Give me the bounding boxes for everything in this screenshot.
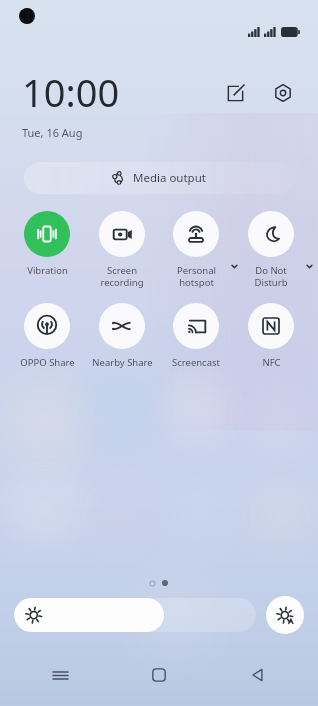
staticText: Personal hotspot [177,264,216,289]
button[interactable]: Recent apps [40,658,80,692]
button[interactable]: Home [139,658,179,692]
button[interactable]: Auto brightness [266,596,304,634]
button[interactable]: Back [238,658,278,692]
button[interactable]: NFC [235,302,307,370]
staticText: OPPO Share [20,356,75,369]
staticText: 10:00 [22,66,120,118]
staticText: Tue, 16 Aug [22,125,83,140]
staticText: Vibration [27,264,68,277]
staticText: Screen recording [100,264,144,289]
button[interactable] [14,598,256,632]
staticText: Media output [133,170,206,186]
button[interactable]: Screencast [160,302,232,370]
button[interactable]: Vibration [11,210,83,278]
staticText: Nearby Share [92,356,153,369]
button[interactable]: OPPO Share [11,302,83,370]
button[interactable]: Screen recording [86,210,158,290]
button[interactable]: Nearby Share [86,302,158,370]
button[interactable]: Do Not Disturb [235,210,307,290]
button[interactable]: Edit quick settings [218,76,252,110]
staticText: Do Not Disturb [254,264,288,289]
staticText: NFC [262,356,281,369]
button[interactable]: Settings [266,76,300,110]
button[interactable]: Media output [24,162,294,194]
staticText: Screencast [172,356,220,369]
button[interactable]: Personal hotspot [160,210,232,290]
